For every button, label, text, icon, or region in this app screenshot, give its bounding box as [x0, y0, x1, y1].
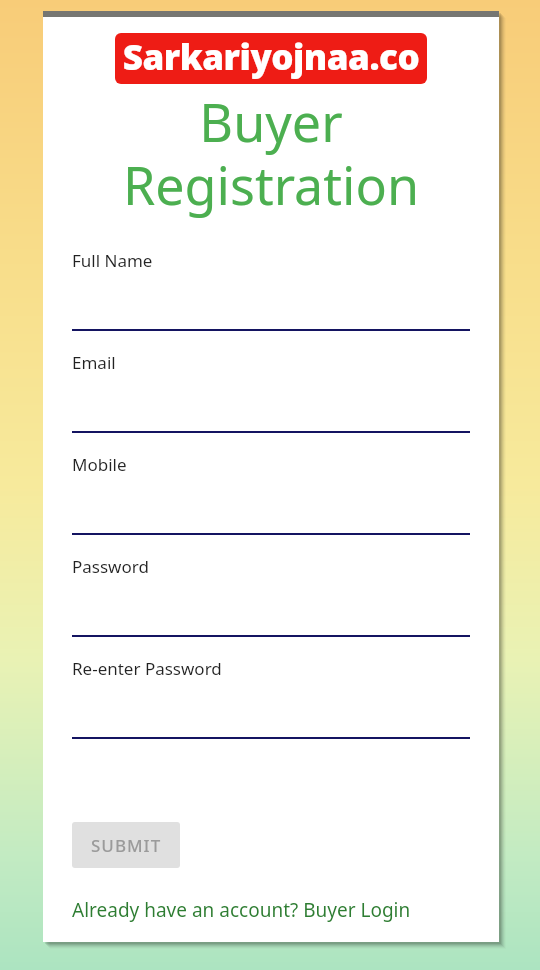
staticText: Re-enter Password — [72, 657, 222, 680]
staticText: Email — [72, 351, 116, 374]
staticText: SUBMIT — [91, 834, 162, 857]
button[interactable]: Password — [72, 555, 470, 657]
button[interactable]: Re-enter Password — [72, 657, 470, 759]
staticText: Already have an account? Buyer Login — [72, 897, 411, 923]
staticText: Full Name — [72, 249, 153, 272]
staticText: Buyer Registration — [55, 86, 487, 220]
button[interactable]: Mobile — [72, 453, 470, 555]
staticText: Sarkariyojnaa.com — [115, 33, 427, 84]
button[interactable]: SUBMIT — [72, 822, 180, 868]
button[interactable]: Sarkariyojnaa.com — [115, 33, 427, 84]
staticText: Password — [72, 555, 149, 578]
staticText: Mobile — [72, 453, 127, 476]
button[interactable]: Email — [72, 351, 470, 453]
button[interactable]: Full Name — [72, 249, 470, 351]
button[interactable]: Already have an account? Buyer Login — [72, 895, 411, 925]
